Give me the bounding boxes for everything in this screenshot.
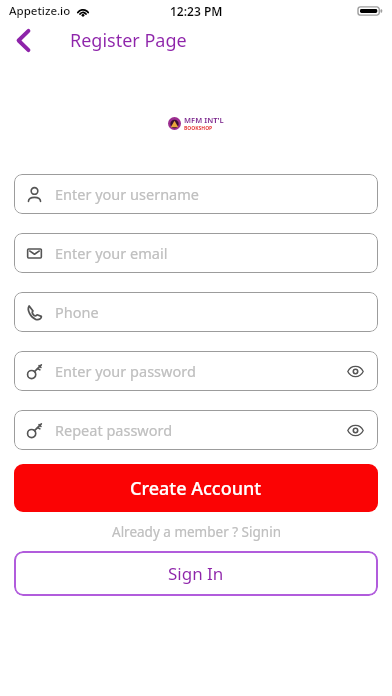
staticText: Register Page: [70, 28, 187, 53]
button[interactable]: Phone: [14, 292, 378, 332]
staticText: MFM INT'L: [184, 115, 224, 125]
staticText: Appetize.io: [9, 3, 71, 19]
staticText: Repeat password: [55, 420, 344, 440]
staticText: Enter your username: [55, 184, 366, 204]
staticText: Phone: [55, 302, 366, 322]
button[interactable]: Sign In: [14, 551, 378, 596]
button[interactable]: Create Account: [14, 464, 378, 512]
button[interactable]: Enter your email: [14, 233, 378, 273]
button[interactable]: Repeat password: [14, 410, 378, 450]
button[interactable]: Show password: [344, 360, 366, 382]
staticText: Enter your email: [55, 243, 366, 263]
button[interactable]: Show password: [344, 419, 366, 441]
staticText: BOOKSHOP: [184, 125, 213, 132]
staticText: Create Account: [130, 476, 262, 501]
button[interactable]: Back: [2, 22, 44, 58]
staticText: Already a member ? Signin: [112, 523, 281, 541]
staticText: Sign In: [168, 562, 224, 585]
button[interactable]: Enter your password: [14, 351, 378, 391]
button[interactable]: Enter your username: [14, 174, 378, 214]
staticText: Enter your password: [55, 361, 344, 381]
staticText: 12:23 PM: [170, 3, 223, 19]
